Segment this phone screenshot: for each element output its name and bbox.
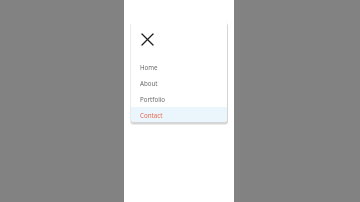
button[interactable]: Contact: [131, 107, 227, 122]
button[interactable]: About: [131, 75, 227, 91]
staticText: About: [140, 79, 158, 87]
staticText: Portfolio: [140, 95, 166, 103]
staticText: Home: [140, 63, 158, 71]
staticText: Contact: [140, 111, 163, 119]
button[interactable]: Portfolio: [131, 91, 227, 107]
button[interactable]: Close menu: [136, 28, 158, 50]
button[interactable]: Home: [131, 59, 227, 75]
